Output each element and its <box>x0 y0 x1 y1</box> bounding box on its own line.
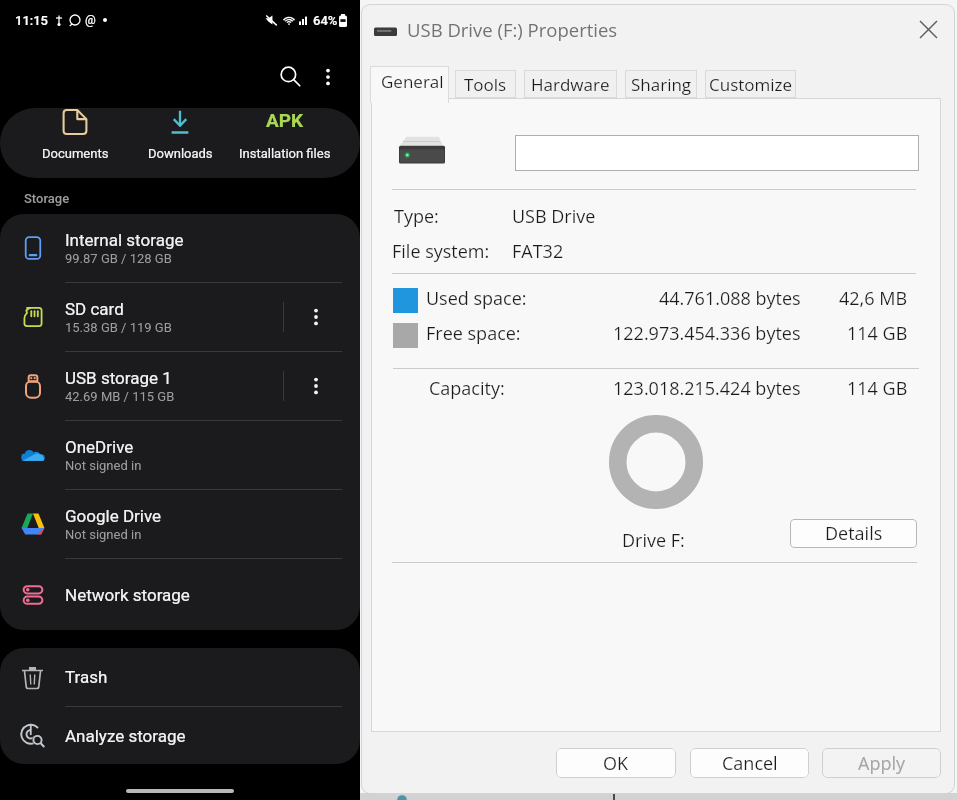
staticText: 123.018.215.424 bytes <box>613 376 801 401</box>
button[interactable]: Hardware <box>524 70 617 98</box>
staticText: Type: <box>394 204 439 229</box>
button[interactable]: Downloads <box>125 108 235 178</box>
button[interactable]: Close <box>902 5 954 53</box>
button[interactable]: Analyze storage <box>0 707 360 764</box>
staticText: Used space: <box>426 286 527 311</box>
staticText: Documents <box>42 146 109 161</box>
staticText: 114 GB <box>847 321 908 346</box>
staticText: Hardware <box>531 73 610 96</box>
staticText: 11:15 <box>15 13 48 28</box>
button[interactable]: More options <box>313 54 343 99</box>
staticText: Apply <box>858 751 905 776</box>
button[interactable]: Trash <box>0 648 360 706</box>
button[interactable]: More options <box>284 352 348 420</box>
staticText: Free space: <box>426 321 521 346</box>
staticText: Google Drive <box>65 506 162 526</box>
staticText: 42.69 MB / 115 GB <box>65 389 175 404</box>
staticText: 64% <box>313 13 338 28</box>
button[interactable]: Apply <box>822 748 941 778</box>
staticText: OK <box>603 751 629 776</box>
staticText: USB Drive <box>512 204 596 229</box>
button[interactable]: APK <box>230 108 340 178</box>
staticText: Downloads <box>148 146 213 161</box>
staticText: 99.87 GB / 128 GB <box>65 251 172 266</box>
staticText: General <box>381 70 444 93</box>
button[interactable]: Tools <box>455 70 516 98</box>
staticText: 42,6 MB <box>839 286 908 311</box>
staticText: @ <box>85 13 96 27</box>
button[interactable]: Google Drive <box>0 490 360 558</box>
staticText: 122.973.454.336 bytes <box>613 321 801 346</box>
button[interactable]: Customize <box>705 70 796 98</box>
staticText: SD card <box>65 299 124 319</box>
staticText: Internal storage <box>65 230 184 250</box>
button[interactable]: USB storage 1 <box>0 352 360 420</box>
button[interactable]: Network storage <box>0 559 360 630</box>
staticText: 44.761.088 bytes <box>659 286 801 311</box>
staticText: Storage <box>24 191 70 206</box>
button[interactable]: Search <box>268 54 313 99</box>
staticText: USB Drive (F:) Properties <box>407 17 618 42</box>
staticText: Not signed in <box>65 527 142 542</box>
staticText: Details <box>825 521 883 546</box>
staticText: Capacity: <box>429 376 505 401</box>
button[interactable]: General <box>370 66 449 103</box>
button[interactable]: SD card <box>0 283 360 351</box>
staticText: Installation files <box>239 146 331 161</box>
button[interactable]: Details <box>790 519 917 548</box>
staticText: Trash <box>65 667 108 687</box>
button[interactable]: Sharing <box>625 70 697 98</box>
button[interactable]: More options <box>284 283 348 351</box>
staticText: FAT32 <box>512 239 564 264</box>
staticText: USB storage 1 <box>65 368 172 388</box>
button[interactable]: Cancel <box>690 748 809 778</box>
button[interactable]: Documents <box>20 108 130 178</box>
staticText: Customize <box>709 73 793 96</box>
staticText: Sharing <box>631 73 692 96</box>
staticText: Analyze storage <box>65 726 186 746</box>
staticText: 15.38 GB / 119 GB <box>65 320 172 335</box>
staticText: Network storage <box>65 585 190 605</box>
staticText: File system: <box>392 239 490 264</box>
staticText: OneDrive <box>65 437 134 457</box>
staticText: Not signed in <box>65 458 142 473</box>
staticText: APK <box>266 109 304 131</box>
button[interactable]: OneDrive <box>0 421 360 489</box>
button[interactable]: Internal storage <box>0 214 360 282</box>
staticText: Drive F: <box>622 528 685 553</box>
staticText: 114 GB <box>847 376 908 401</box>
button[interactable]: OK <box>556 748 676 778</box>
staticText: Cancel <box>722 751 778 776</box>
staticText: Tools <box>464 73 507 96</box>
